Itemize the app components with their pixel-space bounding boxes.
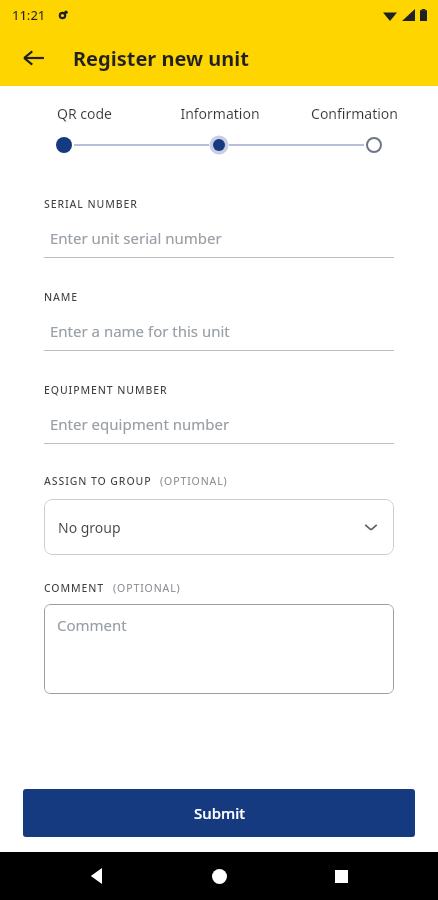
button[interactable]: NAME <box>44 290 394 351</box>
button[interactable]: Back <box>74 852 122 900</box>
staticText: Enter equipment number <box>50 414 230 434</box>
staticText: QR code <box>57 104 112 123</box>
button[interactable]: Recent apps <box>317 852 365 900</box>
button[interactable]: Comment <box>44 604 394 694</box>
staticText: NAME <box>44 290 79 304</box>
button[interactable]: EQUIPMENT NUMBER <box>44 383 394 444</box>
staticText: Information <box>180 104 260 123</box>
staticText: 11:21 <box>12 6 46 24</box>
button[interactable]: QR code <box>16 104 152 123</box>
staticText: (OPTIONAL) <box>160 474 228 488</box>
button[interactable]: Information <box>152 104 287 123</box>
button[interactable]: Home <box>195 852 243 900</box>
staticText: Register new unit <box>73 45 249 72</box>
button[interactable]: SERIAL NUMBER <box>44 197 394 258</box>
staticText: COMMENT <box>44 581 105 595</box>
staticText: No group <box>58 518 121 537</box>
button[interactable]: Confirmation <box>287 104 422 123</box>
staticText: (OPTIONAL) <box>113 581 181 595</box>
staticText: Comment <box>57 615 127 635</box>
staticText: Enter a name for this unit <box>50 321 230 341</box>
staticText: Submit <box>194 803 245 823</box>
staticText: Confirmation <box>311 104 398 123</box>
staticText: SERIAL NUMBER <box>44 197 138 211</box>
button[interactable]: Submit <box>23 789 415 837</box>
button[interactable]: Back <box>10 34 58 82</box>
staticText: EQUIPMENT NUMBER <box>44 383 168 397</box>
staticText: Enter unit serial number <box>50 228 222 248</box>
staticText: ASSIGN TO GROUP <box>44 474 152 488</box>
button[interactable]: No group <box>44 499 394 555</box>
